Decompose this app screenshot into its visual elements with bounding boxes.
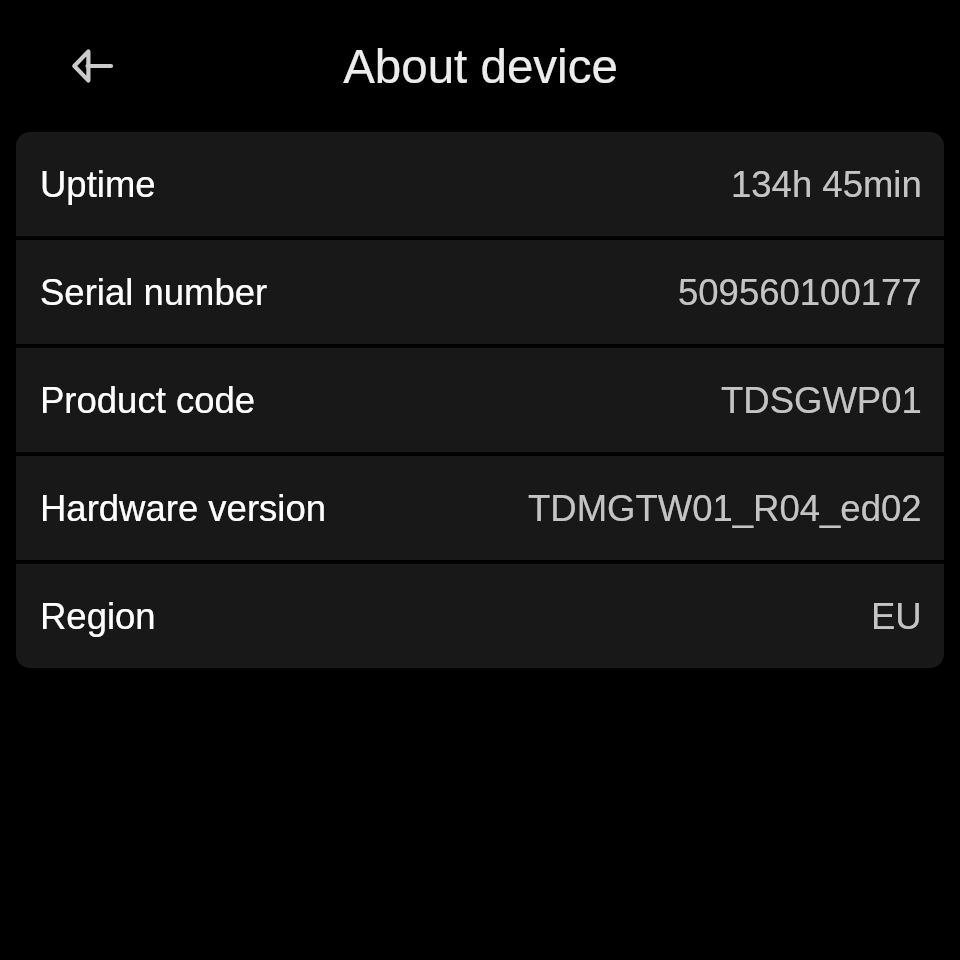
staticText: Hardware version [40, 488, 327, 529]
staticText: About device [343, 40, 618, 93]
staticText: 509560100177 [678, 272, 922, 313]
button[interactable]: Back [56, 30, 128, 102]
button[interactable]: Product code [16, 348, 944, 452]
staticText: TDMGTW01_R04_ed02 [528, 488, 922, 529]
button[interactable]: Serial number [16, 240, 944, 344]
button[interactable]: Hardware version [16, 456, 944, 560]
staticText: 134h 45min [731, 164, 922, 205]
staticText: Region [40, 596, 156, 637]
button[interactable]: Uptime [16, 132, 944, 236]
staticText: Serial number [40, 272, 268, 313]
button[interactable]: Region [16, 564, 944, 668]
staticText: Product code [40, 380, 256, 421]
staticText: TDSGWP01 [721, 380, 922, 421]
staticText: Uptime [40, 164, 156, 205]
staticText: EU [871, 596, 922, 637]
